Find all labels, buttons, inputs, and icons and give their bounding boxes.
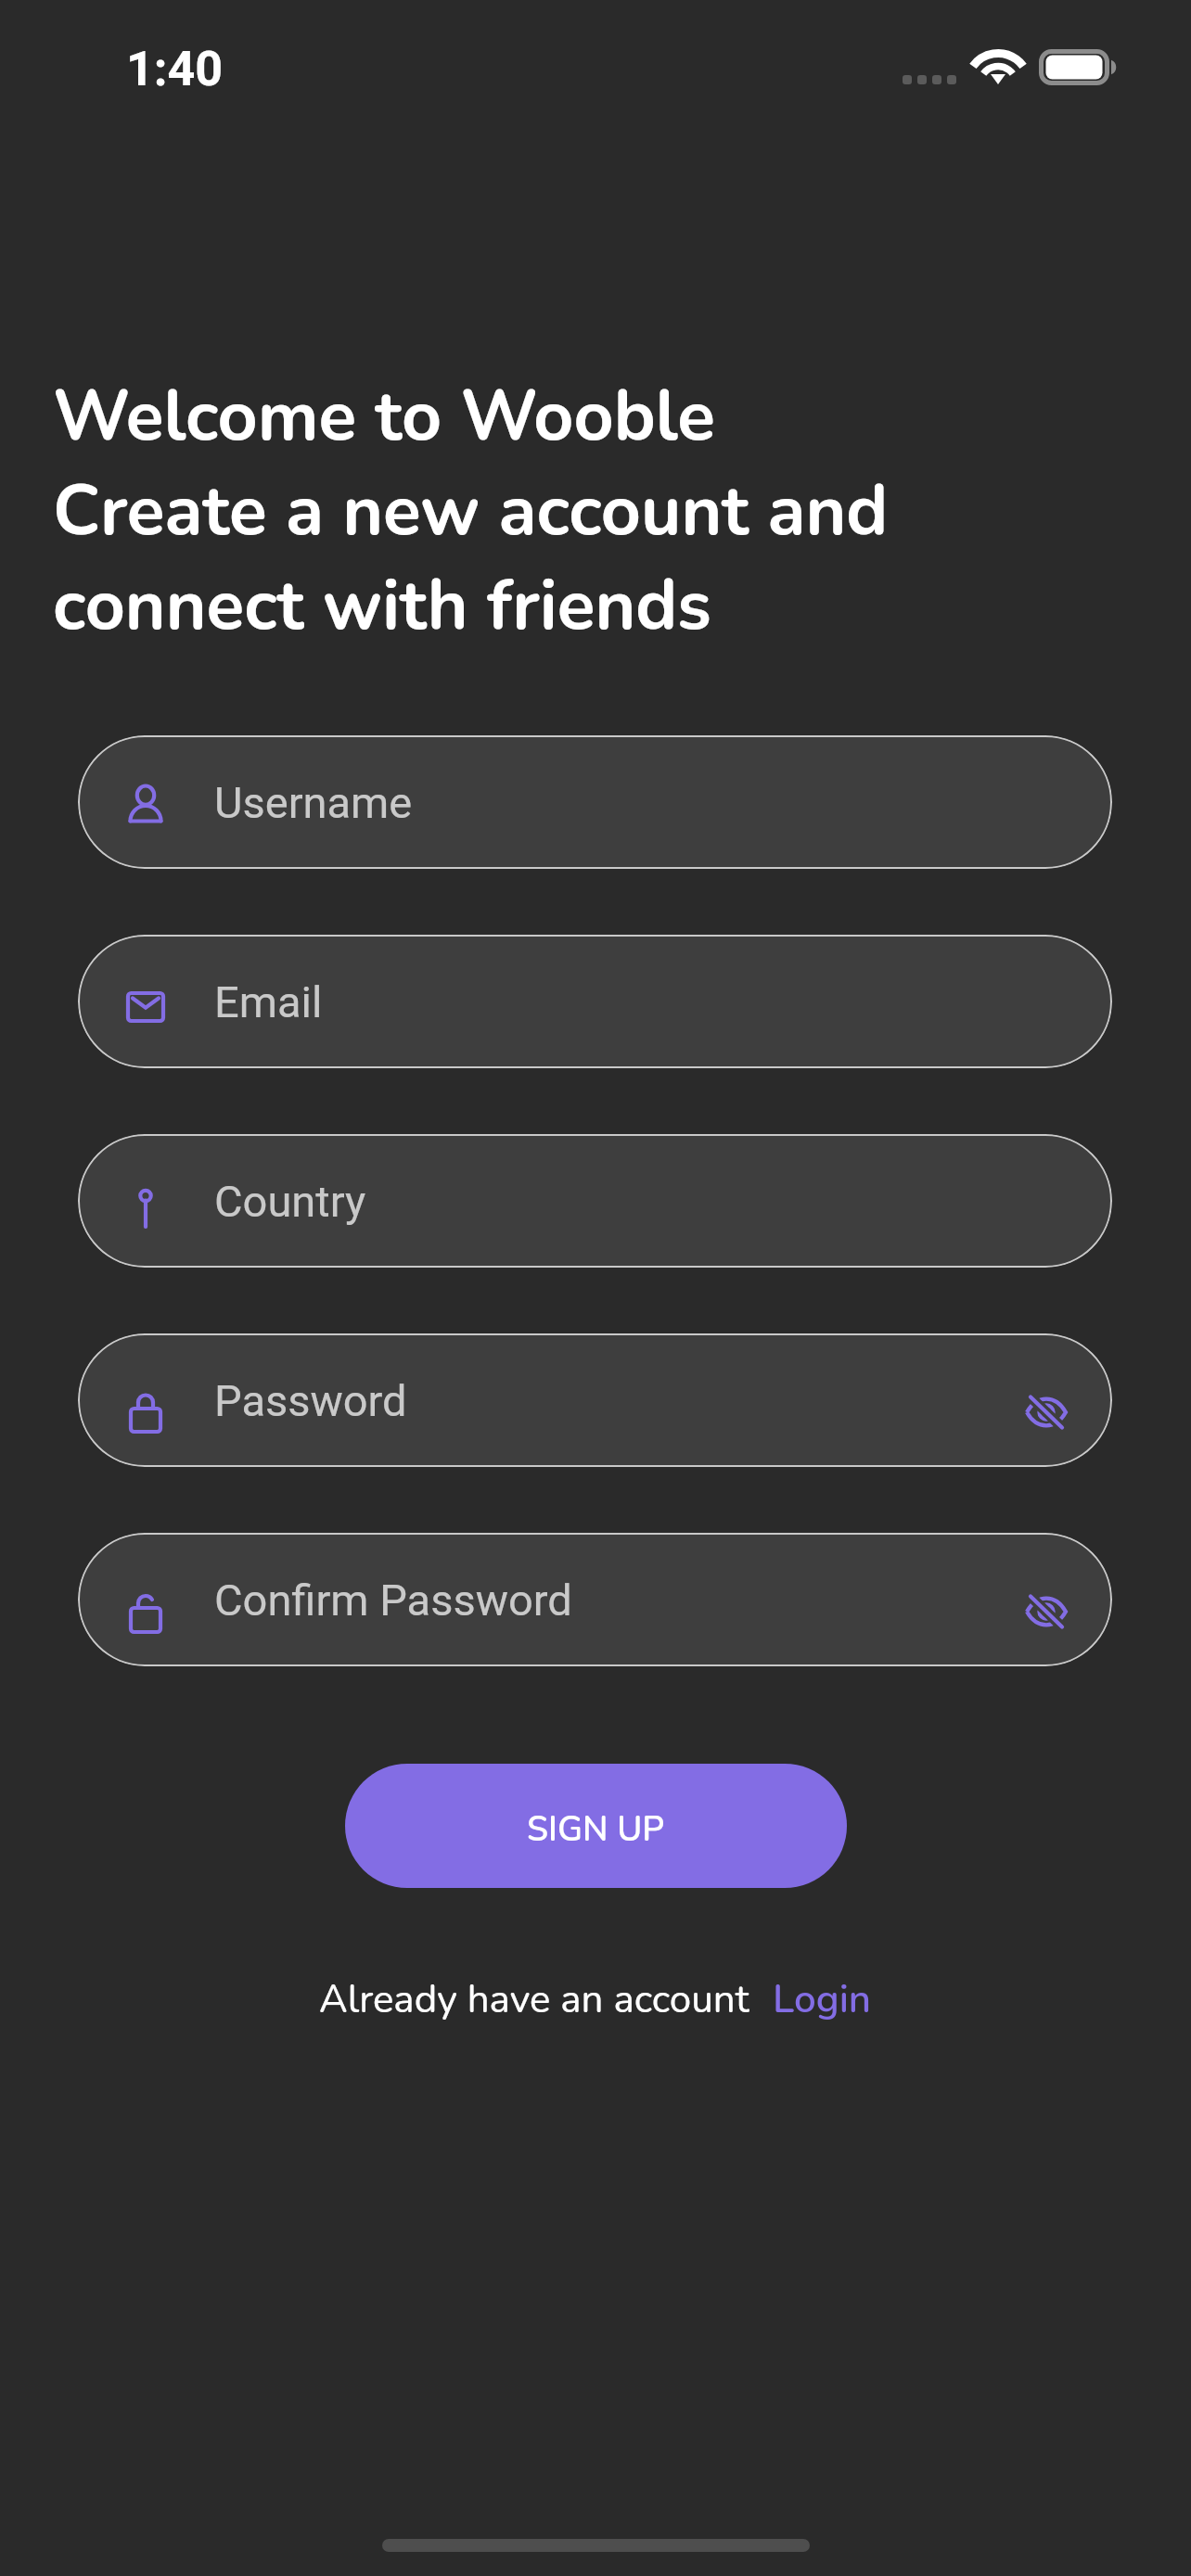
button[interactable]: Show password (1002, 1567, 1091, 1656)
staticText: SIGN UP (527, 1806, 665, 1853)
button[interactable]: Country (78, 1134, 1112, 1268)
button[interactable]: Password (78, 1333, 1112, 1467)
other: Cellular signal (903, 75, 956, 84)
button[interactable]: Username (78, 735, 1112, 869)
staticText: Password (214, 1375, 407, 1426)
staticText: Country (214, 1176, 366, 1227)
staticText: Welcome to Wooble Create a new account a… (53, 369, 1146, 653)
staticText: Username (214, 777, 413, 828)
staticText: Confirm Password (214, 1575, 572, 1626)
button[interactable]: SIGN UP (345, 1764, 847, 1888)
staticText: Already have an account (319, 1973, 749, 2026)
button[interactable]: Show password (1002, 1368, 1091, 1457)
staticText: 1:40 (126, 41, 224, 97)
other: Wi-Fi (966, 45, 1031, 89)
button[interactable]: Confirm Password (78, 1533, 1112, 1666)
button[interactable]: Login (773, 1973, 872, 2026)
button[interactable]: Email (78, 935, 1112, 1068)
staticText: Login (773, 1973, 872, 2026)
staticText: Email (214, 976, 323, 1027)
other: Battery (1039, 49, 1119, 86)
